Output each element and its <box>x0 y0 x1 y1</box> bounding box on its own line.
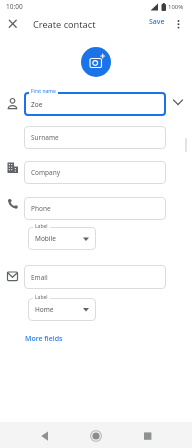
button[interactable]: Surname <box>24 126 166 149</box>
button[interactable]: Save <box>149 17 169 31</box>
staticText: 10:00 <box>6 2 23 11</box>
staticText: Save <box>149 17 165 27</box>
staticText: Mobile <box>35 234 56 243</box>
staticText: Label <box>35 294 48 301</box>
staticText: Label <box>35 223 48 230</box>
button[interactable]: More fields <box>25 334 65 346</box>
staticText: Surname <box>31 133 59 142</box>
button[interactable] <box>81 47 111 77</box>
staticText: Email <box>31 273 48 282</box>
button[interactable] <box>86 426 106 446</box>
button[interactable] <box>4 16 20 32</box>
staticText: Company <box>31 168 61 177</box>
button[interactable]: Phone <box>24 197 166 220</box>
staticText: More fields <box>25 334 63 344</box>
button[interactable]: Company <box>24 161 166 184</box>
button[interactable] <box>172 16 186 32</box>
button[interactable]: Zoe <box>24 92 166 116</box>
staticText: Create contact <box>33 18 96 31</box>
button[interactable]: Mobile <box>28 227 96 250</box>
button[interactable] <box>36 426 56 446</box>
button[interactable]: Email <box>24 265 166 289</box>
staticText: Zoe <box>31 100 43 109</box>
button[interactable]: Home <box>28 298 96 321</box>
staticText: Phone <box>31 204 51 213</box>
staticText: Home <box>35 305 54 314</box>
staticText: First name <box>31 88 56 95</box>
button[interactable] <box>138 426 158 446</box>
staticText: 100% <box>168 3 184 11</box>
